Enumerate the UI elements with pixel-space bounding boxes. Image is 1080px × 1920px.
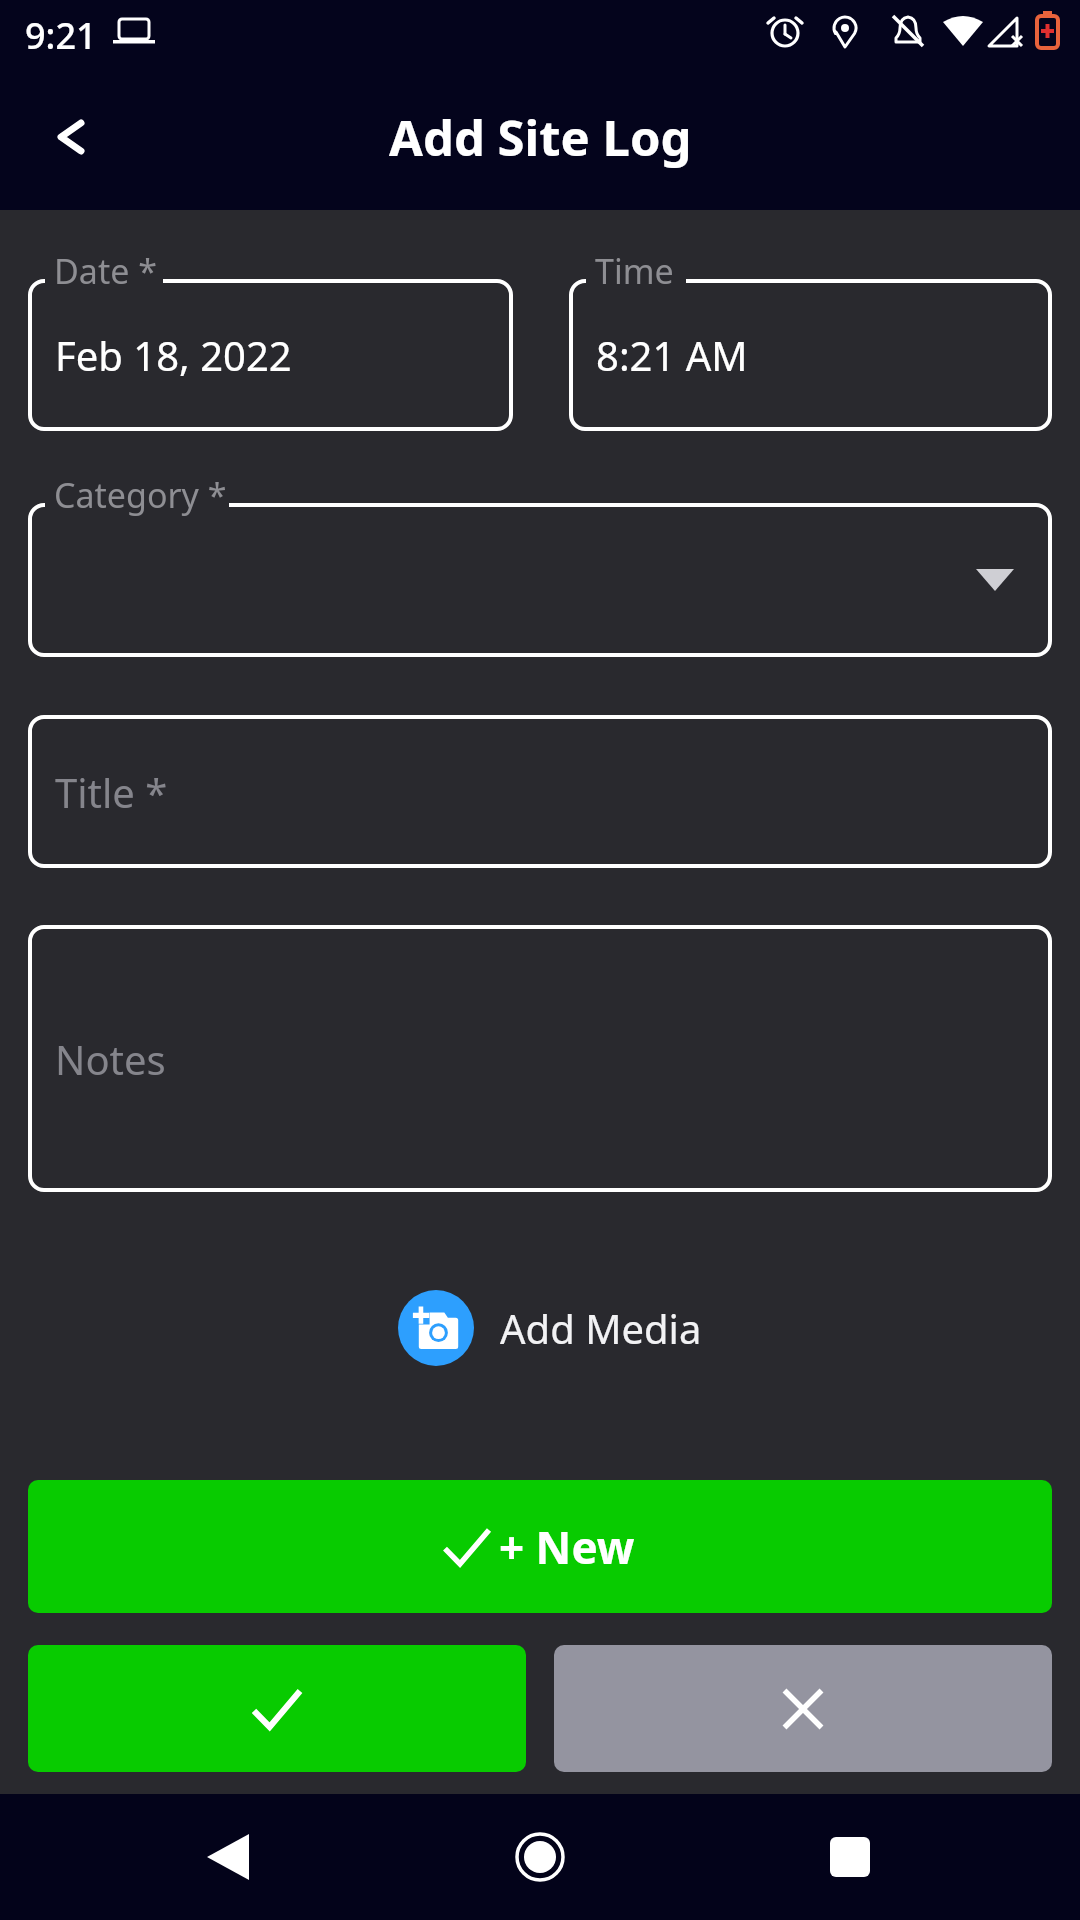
staticText: Category * <box>54 472 227 518</box>
button[interactable]: Time <box>569 279 1052 431</box>
button[interactable]: + New <box>28 1480 1052 1613</box>
button[interactable] <box>812 1819 888 1895</box>
button[interactable]: Title * <box>28 715 1052 868</box>
button[interactable] <box>502 1819 578 1895</box>
staticText: Feb 18, 2022 <box>55 328 292 382</box>
staticText: 8:21 AM <box>596 328 748 382</box>
button[interactable]: Add Media <box>398 1289 702 1367</box>
button[interactable]: Notes <box>28 925 1052 1192</box>
staticText: + New <box>499 1517 635 1577</box>
button[interactable]: Category * <box>28 503 1052 657</box>
button[interactable] <box>40 105 104 169</box>
staticText: 9:21 <box>25 11 97 60</box>
button[interactable] <box>28 1645 526 1772</box>
staticText: Add Site Log <box>389 104 692 171</box>
button[interactable]: Date * <box>28 279 513 431</box>
button[interactable] <box>190 1819 266 1895</box>
staticText: Add Media <box>500 1301 702 1355</box>
staticText: Date * <box>54 248 157 294</box>
button[interactable] <box>554 1645 1052 1772</box>
staticText: Title * <box>55 765 168 819</box>
staticText: Notes <box>55 1032 166 1086</box>
staticText: Time <box>595 248 674 294</box>
